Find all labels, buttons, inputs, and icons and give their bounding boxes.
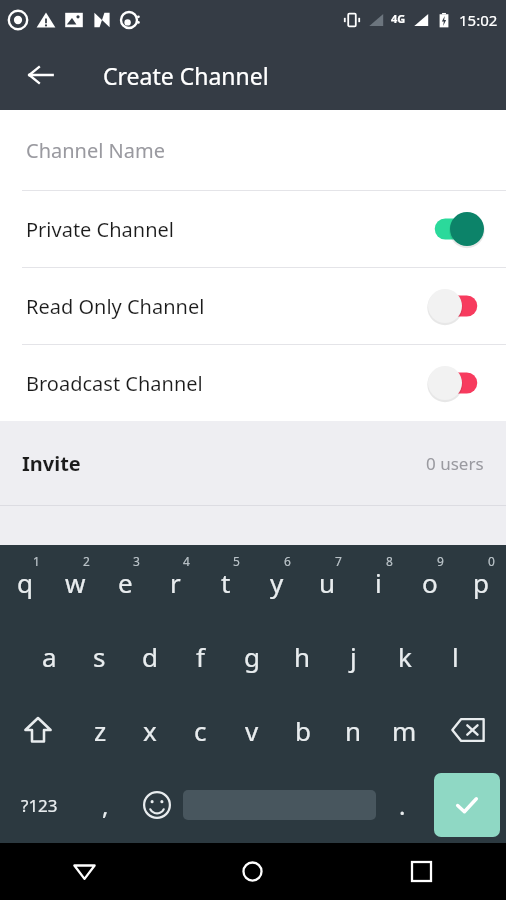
button[interactable]: l	[430, 619, 481, 693]
button[interactable]: Shift	[0, 693, 75, 767]
staticText: 0	[488, 553, 495, 569]
staticText: w	[65, 565, 86, 600]
button[interactable]: Private Channel	[0, 191, 506, 267]
button[interactable]: g	[226, 619, 277, 693]
staticText: q	[17, 565, 33, 600]
button[interactable]: Home	[168, 843, 337, 900]
staticText: s	[93, 639, 106, 674]
button[interactable]: Backspace	[430, 693, 506, 767]
button[interactable]: z	[75, 693, 125, 767]
staticText: 4	[183, 553, 190, 569]
staticText: z	[94, 713, 107, 748]
staticText: n	[345, 713, 362, 748]
staticText: 2	[83, 553, 90, 569]
staticText: Create Channel	[103, 60, 269, 91]
staticText: ?123	[21, 794, 58, 817]
button[interactable]: w	[50, 545, 100, 619]
button[interactable]: Enter	[434, 773, 500, 837]
button[interactable]: ,	[79, 767, 131, 843]
staticText: t	[221, 565, 231, 600]
staticText: y	[270, 565, 284, 600]
button[interactable]: x	[125, 693, 175, 767]
button[interactable]: Recent apps	[337, 843, 506, 900]
staticText: o	[422, 565, 438, 600]
staticText: .	[399, 789, 406, 822]
button[interactable]: y	[251, 545, 302, 619]
staticText: Broadcast Channel	[26, 370, 203, 397]
button[interactable]: Read Only Channel	[0, 268, 506, 344]
staticText: ,	[102, 789, 109, 822]
button[interactable]: m	[379, 693, 430, 767]
button[interactable]: a	[24, 619, 74, 693]
button[interactable]: b	[277, 693, 328, 767]
staticText: c	[194, 713, 207, 748]
button[interactable]: c	[175, 693, 226, 767]
staticText: 9	[437, 553, 444, 569]
staticText: 3	[133, 553, 140, 569]
staticText: f	[196, 639, 205, 674]
button[interactable]: Broadcast Channel	[0, 345, 506, 421]
button[interactable]: q	[0, 545, 50, 619]
staticText: k	[398, 639, 412, 674]
staticText: r	[170, 565, 181, 600]
button[interactable]: .	[376, 767, 428, 843]
button[interactable]: h	[277, 619, 328, 693]
button[interactable]: i	[353, 545, 404, 619]
staticText: d	[142, 639, 158, 674]
button[interactable]: e	[100, 545, 150, 619]
staticText: Private Channel	[26, 216, 174, 243]
staticText: x	[143, 713, 157, 748]
staticText: 0 users	[426, 452, 484, 475]
staticText: m	[392, 713, 417, 748]
staticText: l	[452, 639, 459, 674]
staticText: 4G	[391, 11, 406, 26]
button[interactable]: Channel Name	[0, 110, 506, 190]
staticText: j	[350, 639, 357, 674]
button[interactable]: o	[404, 545, 455, 619]
button[interactable]: Emoji	[131, 767, 183, 843]
staticText: 7	[335, 553, 342, 569]
staticText: h	[294, 639, 311, 674]
staticText: Channel Name	[26, 137, 165, 164]
button[interactable]: Back	[0, 843, 168, 900]
staticText: 5	[233, 553, 240, 569]
staticText: Read Only Channel	[26, 293, 205, 320]
button[interactable]: d	[124, 619, 175, 693]
button[interactable]: ?123	[0, 767, 79, 843]
button[interactable]: s	[74, 619, 124, 693]
staticText: 6	[284, 553, 291, 569]
staticText: 1	[33, 553, 40, 569]
staticText: b	[295, 713, 311, 748]
staticText: a	[42, 639, 57, 674]
button[interactable]: r	[150, 545, 200, 619]
button[interactable]: Space	[183, 767, 376, 843]
button[interactable]: f	[175, 619, 226, 693]
staticText: v	[245, 713, 259, 748]
button[interactable]: Invite	[0, 421, 506, 505]
button[interactable]: k	[379, 619, 430, 693]
button[interactable]: t	[200, 545, 251, 619]
staticText: g	[244, 639, 260, 674]
staticText: p	[473, 565, 489, 600]
staticText: Invite	[22, 450, 81, 477]
staticText: u	[319, 565, 336, 600]
button[interactable]: u	[302, 545, 353, 619]
button[interactable]: j	[328, 619, 379, 693]
button[interactable]: Back	[16, 50, 66, 100]
staticText: 15:02	[459, 10, 498, 30]
staticText: e	[118, 565, 133, 600]
staticText: 8	[386, 553, 393, 569]
button[interactable]: v	[226, 693, 277, 767]
button[interactable]: p	[455, 545, 506, 619]
button[interactable]: n	[328, 693, 379, 767]
staticText: i	[375, 565, 382, 600]
